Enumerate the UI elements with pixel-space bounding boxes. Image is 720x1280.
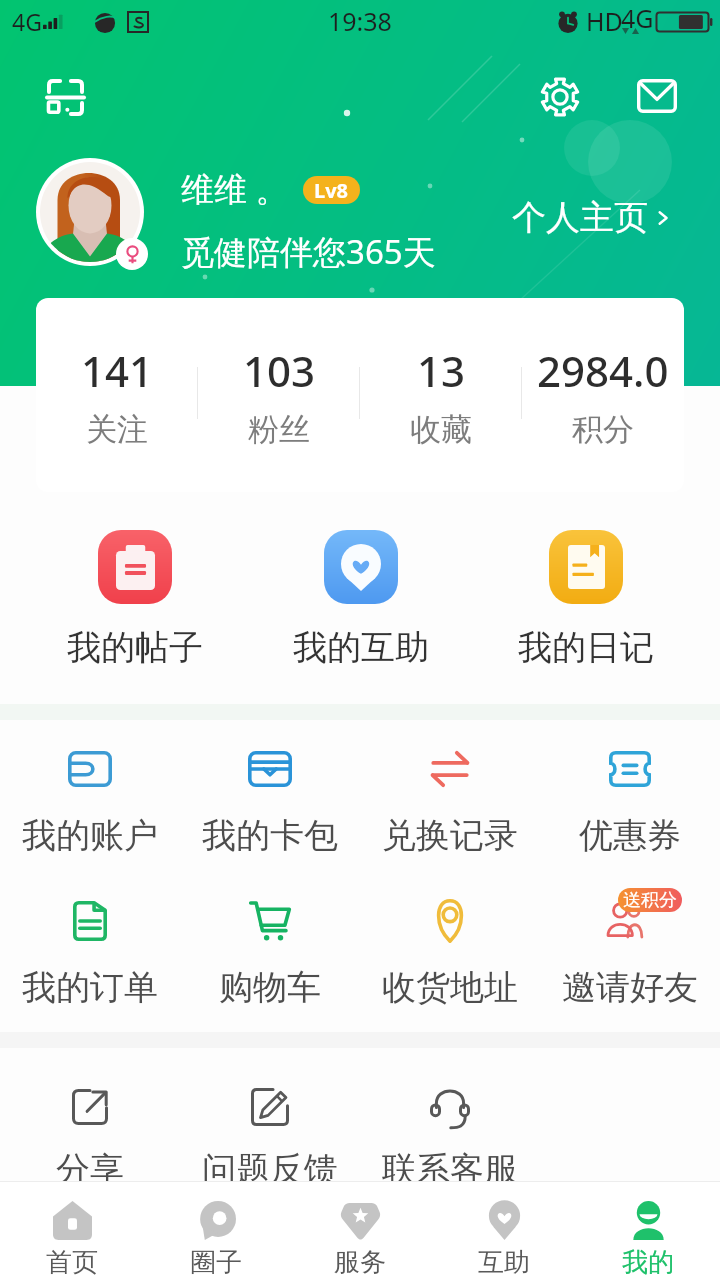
staticText: 我的账户 [22, 814, 158, 857]
button[interactable]: 13 [360, 298, 522, 492]
button[interactable]: 我的订单 [0, 872, 180, 1024]
button[interactable]: 圈子 [144, 1181, 288, 1280]
button[interactable]: 联系客服 [360, 1044, 540, 1224]
button[interactable]: 兑换记录 [360, 720, 540, 872]
staticText: 互助 [478, 1246, 530, 1279]
button[interactable]: 我的帖子 [22, 520, 248, 680]
staticText: HD [586, 4, 623, 38]
button[interactable]: 分享 [0, 1044, 180, 1224]
staticText: 4G [12, 6, 42, 37]
staticText: 维维 。 [181, 166, 289, 211]
staticText: 分享 [56, 1148, 124, 1191]
staticText: 我的日记 [518, 626, 654, 669]
staticText: 我的互助 [293, 626, 429, 669]
staticText: 粉丝 [248, 410, 310, 449]
staticText: 个人主页 [512, 196, 648, 239]
button[interactable]: 我的 [576, 1181, 720, 1280]
staticText: 服务 [334, 1246, 386, 1279]
staticText: 首页 [46, 1246, 98, 1279]
button[interactable]: 我的日记 [473, 520, 698, 680]
staticText: 141 [81, 342, 154, 399]
button[interactable]: 103 [198, 298, 360, 492]
staticText: 兑换记录 [382, 814, 518, 857]
staticText: 问题反馈 [202, 1148, 338, 1191]
staticText: 联系客服 [382, 1148, 518, 1191]
staticText: Lv8 [314, 177, 349, 204]
staticText: 邀请好友 [562, 966, 698, 1009]
staticText: 积分 [572, 410, 634, 449]
staticText: 我的帖子 [67, 626, 203, 669]
button[interactable]: Scan QR code [34, 66, 96, 128]
staticText: 19:38 [328, 4, 392, 38]
staticText: 优惠券 [579, 814, 681, 857]
button[interactable]: 互助 [432, 1181, 576, 1280]
button[interactable]: 购物车 [180, 872, 360, 1024]
button[interactable]: 问题反馈 [180, 1044, 360, 1224]
staticText: 13 [417, 342, 466, 399]
button[interactable]: 服务 [288, 1181, 432, 1280]
staticText: 我的 [622, 1246, 674, 1279]
button[interactable]: 2984.0 [522, 298, 684, 492]
staticText: 103 [243, 342, 316, 399]
button[interactable]: Settings [529, 66, 591, 128]
staticText: 购物车 [219, 966, 321, 1009]
button[interactable]: 首页 [0, 1181, 144, 1280]
button[interactable]: 收货地址 [360, 872, 540, 1024]
button[interactable]: 我的账户 [0, 720, 180, 872]
staticText: 收藏 [410, 410, 472, 449]
button[interactable]: 优惠券 [540, 720, 720, 872]
staticText: 2984.0 [537, 342, 669, 399]
staticText: 圈子 [190, 1246, 242, 1279]
button[interactable]: 个人主页 [508, 192, 679, 243]
button[interactable]: 141 [36, 298, 198, 492]
button[interactable]: Messages [626, 65, 688, 127]
staticText: 送积分 [623, 889, 677, 912]
button[interactable]: 我的互助 [248, 520, 473, 680]
button[interactable]: 送积分 [540, 872, 720, 1024]
staticText: 我的订单 [22, 966, 158, 1009]
button[interactable]: 我的卡包 [180, 720, 360, 872]
staticText: 觅健陪伴您365天 [181, 229, 436, 274]
staticText: 4G [621, 1, 654, 35]
staticText: 收货地址 [382, 966, 518, 1009]
staticText: 关注 [86, 410, 148, 449]
staticText: 我的卡包 [202, 814, 338, 857]
